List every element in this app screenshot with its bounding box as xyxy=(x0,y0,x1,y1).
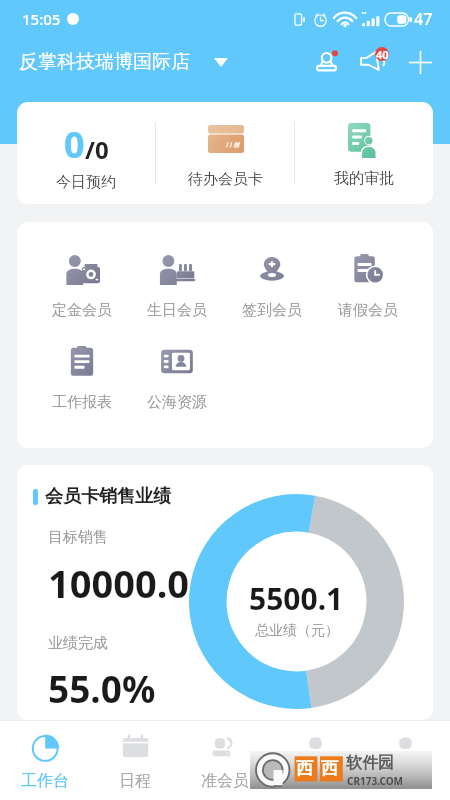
staticText: 47 xyxy=(414,8,433,30)
staticText: CR173.COM xyxy=(347,774,404,788)
staticText: 准会员 xyxy=(201,771,249,791)
staticText: 40 xyxy=(376,47,389,62)
staticText: 反掌科技瑞博国际店 xyxy=(19,50,190,74)
staticText: 请假会员 xyxy=(338,301,398,320)
button[interactable]: 签到会员 xyxy=(224,254,320,320)
staticText: 55.0% xyxy=(48,663,156,713)
staticText: 10000.0 xyxy=(48,557,190,609)
staticText: 0 xyxy=(64,120,85,169)
button[interactable]: Members xyxy=(311,44,347,80)
staticText: 目标销售 xyxy=(48,528,108,547)
staticText: 我的审批 xyxy=(334,169,394,188)
staticText: 签到会员 xyxy=(242,301,302,320)
staticText: 生日会员 xyxy=(147,301,207,320)
staticText: 日程 xyxy=(119,771,151,791)
staticText: 公海资源 xyxy=(147,393,207,412)
staticText: 西 xyxy=(296,758,313,779)
staticText: 工作报表 xyxy=(52,393,112,412)
button[interactable]: 工作台 xyxy=(0,721,90,800)
staticText: 总业绩（元） xyxy=(255,622,339,640)
staticText: 业绩完成 xyxy=(48,634,108,653)
staticText: 待办会员卡 xyxy=(188,170,263,189)
button[interactable]: 反掌科技瑞博国际店 xyxy=(19,50,228,74)
button[interactable]: 会员 xyxy=(270,721,360,800)
staticText: 我的 xyxy=(389,771,421,791)
button[interactable]: Add xyxy=(401,43,439,81)
button[interactable]: 生日会员 xyxy=(129,254,224,320)
staticText: 5500.1 xyxy=(249,578,344,619)
button[interactable]: 日程 xyxy=(90,721,180,800)
staticText: 今日预约 xyxy=(56,173,116,192)
button[interactable]: 待办会员卡 xyxy=(156,102,294,204)
button[interactable]: Announcements xyxy=(355,43,393,81)
staticText: 工作台 xyxy=(21,771,69,791)
button[interactable]: 请假会员 xyxy=(320,254,416,320)
staticText: 15:05 xyxy=(22,9,61,29)
button[interactable]: 准会员 xyxy=(180,721,270,800)
button[interactable]: 我的审批 xyxy=(295,102,433,204)
button[interactable]: 定金会员 xyxy=(34,254,129,320)
button[interactable]: 我的 xyxy=(360,721,450,800)
button[interactable]: 0 xyxy=(17,102,155,204)
staticText: /0 xyxy=(85,133,109,166)
staticText: 西 xyxy=(321,758,338,779)
staticText: 定金会员 xyxy=(52,301,112,320)
staticText: 软件园 xyxy=(346,753,394,773)
button[interactable]: 工作报表 xyxy=(34,346,129,412)
button[interactable]: 公海资源 xyxy=(129,346,225,412)
staticText: 会员 xyxy=(299,771,331,791)
staticText: 会员卡销售业绩 xyxy=(45,485,171,508)
